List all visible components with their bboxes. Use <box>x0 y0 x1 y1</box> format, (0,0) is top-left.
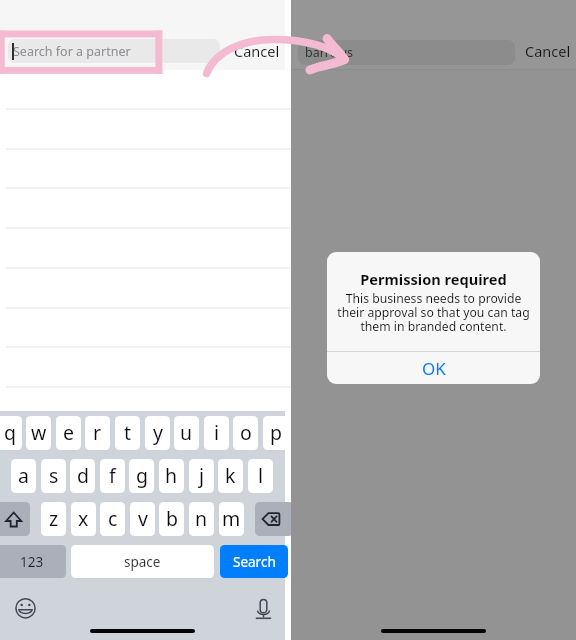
staticText: OK <box>422 357 446 380</box>
staticText: x <box>78 505 89 532</box>
staticText: e <box>63 419 74 446</box>
staticText: g <box>136 462 148 489</box>
staticText: u <box>180 419 193 446</box>
button[interactable]: a <box>11 459 36 493</box>
button[interactable]: t <box>115 416 140 450</box>
button[interactable]: p <box>263 416 288 450</box>
staticText: This business needs to provide their app… <box>333 290 534 335</box>
staticText: Cancel <box>234 41 280 61</box>
button[interactable]: j <box>189 459 214 493</box>
button[interactable]: r <box>85 416 110 450</box>
button[interactable]: q <box>0 416 22 450</box>
staticText: a <box>18 462 29 489</box>
staticText: p <box>270 419 282 446</box>
button[interactable]: y <box>145 416 170 450</box>
button[interactable] <box>0 70 285 110</box>
staticText: w <box>31 419 47 446</box>
staticText: Cancel <box>525 41 571 61</box>
button[interactable]: barrows <box>298 40 515 65</box>
staticText: barrows <box>305 44 353 61</box>
button[interactable] <box>0 229 285 269</box>
button[interactable] <box>0 348 285 388</box>
button[interactable]: b <box>159 502 184 536</box>
button[interactable] <box>0 269 285 309</box>
staticText: d <box>77 462 89 489</box>
staticText: r <box>93 419 102 446</box>
button[interactable]: Emoji <box>11 594 40 623</box>
button[interactable]: g <box>129 459 154 493</box>
button[interactable] <box>0 149 285 189</box>
staticText: k <box>225 462 236 489</box>
staticText: space <box>124 553 161 571</box>
staticText: j <box>199 462 205 489</box>
staticText: v <box>138 505 148 532</box>
staticText: h <box>165 462 178 489</box>
button[interactable] <box>0 110 285 150</box>
button[interactable]: k <box>218 459 243 493</box>
button[interactable]: OK <box>327 352 540 384</box>
button[interactable]: f <box>100 459 125 493</box>
button[interactable]: Search <box>220 545 288 578</box>
staticText: Search for a partner <box>13 43 131 60</box>
button[interactable]: m <box>219 502 244 536</box>
staticText: f <box>109 462 116 489</box>
button[interactable]: h <box>159 459 184 493</box>
staticText: t <box>124 419 132 446</box>
button[interactable]: Backspace <box>255 502 293 536</box>
button[interactable]: l <box>248 459 273 493</box>
staticText: o <box>240 419 252 446</box>
button[interactable]: u <box>174 416 199 450</box>
button[interactable]: z <box>41 502 66 536</box>
staticText: i <box>214 419 220 446</box>
button[interactable]: i <box>204 416 229 450</box>
button[interactable] <box>0 308 285 348</box>
button[interactable]: n <box>189 502 214 536</box>
staticText: y <box>153 419 163 446</box>
staticText: s <box>49 462 59 489</box>
button[interactable]: o <box>233 416 258 450</box>
staticText: q <box>4 419 16 446</box>
button[interactable]: e <box>56 416 81 450</box>
staticText: n <box>195 505 208 532</box>
staticText: b <box>166 505 178 532</box>
staticText: m <box>222 505 241 532</box>
button[interactable]: v <box>130 502 155 536</box>
button[interactable]: Search for a partner <box>8 39 220 63</box>
button[interactable]: space <box>71 545 214 578</box>
staticText: z <box>49 505 59 532</box>
button[interactable]: x <box>71 502 96 536</box>
staticText: Search <box>233 553 276 571</box>
button[interactable]: Microphone <box>249 597 278 626</box>
button[interactable]: 123 <box>0 545 66 578</box>
button[interactable]: Shift <box>0 502 30 536</box>
button[interactable]: Cancel <box>525 39 571 63</box>
button[interactable] <box>0 189 285 229</box>
button[interactable]: Cancel <box>234 39 280 63</box>
button[interactable]: s <box>41 459 66 493</box>
staticText: Permission required <box>333 269 534 289</box>
button[interactable]: d <box>70 459 95 493</box>
staticText: 123 <box>20 553 44 571</box>
staticText: l <box>258 462 264 489</box>
staticText: c <box>108 505 118 532</box>
button[interactable]: c <box>100 502 125 536</box>
button[interactable]: w <box>26 416 51 450</box>
